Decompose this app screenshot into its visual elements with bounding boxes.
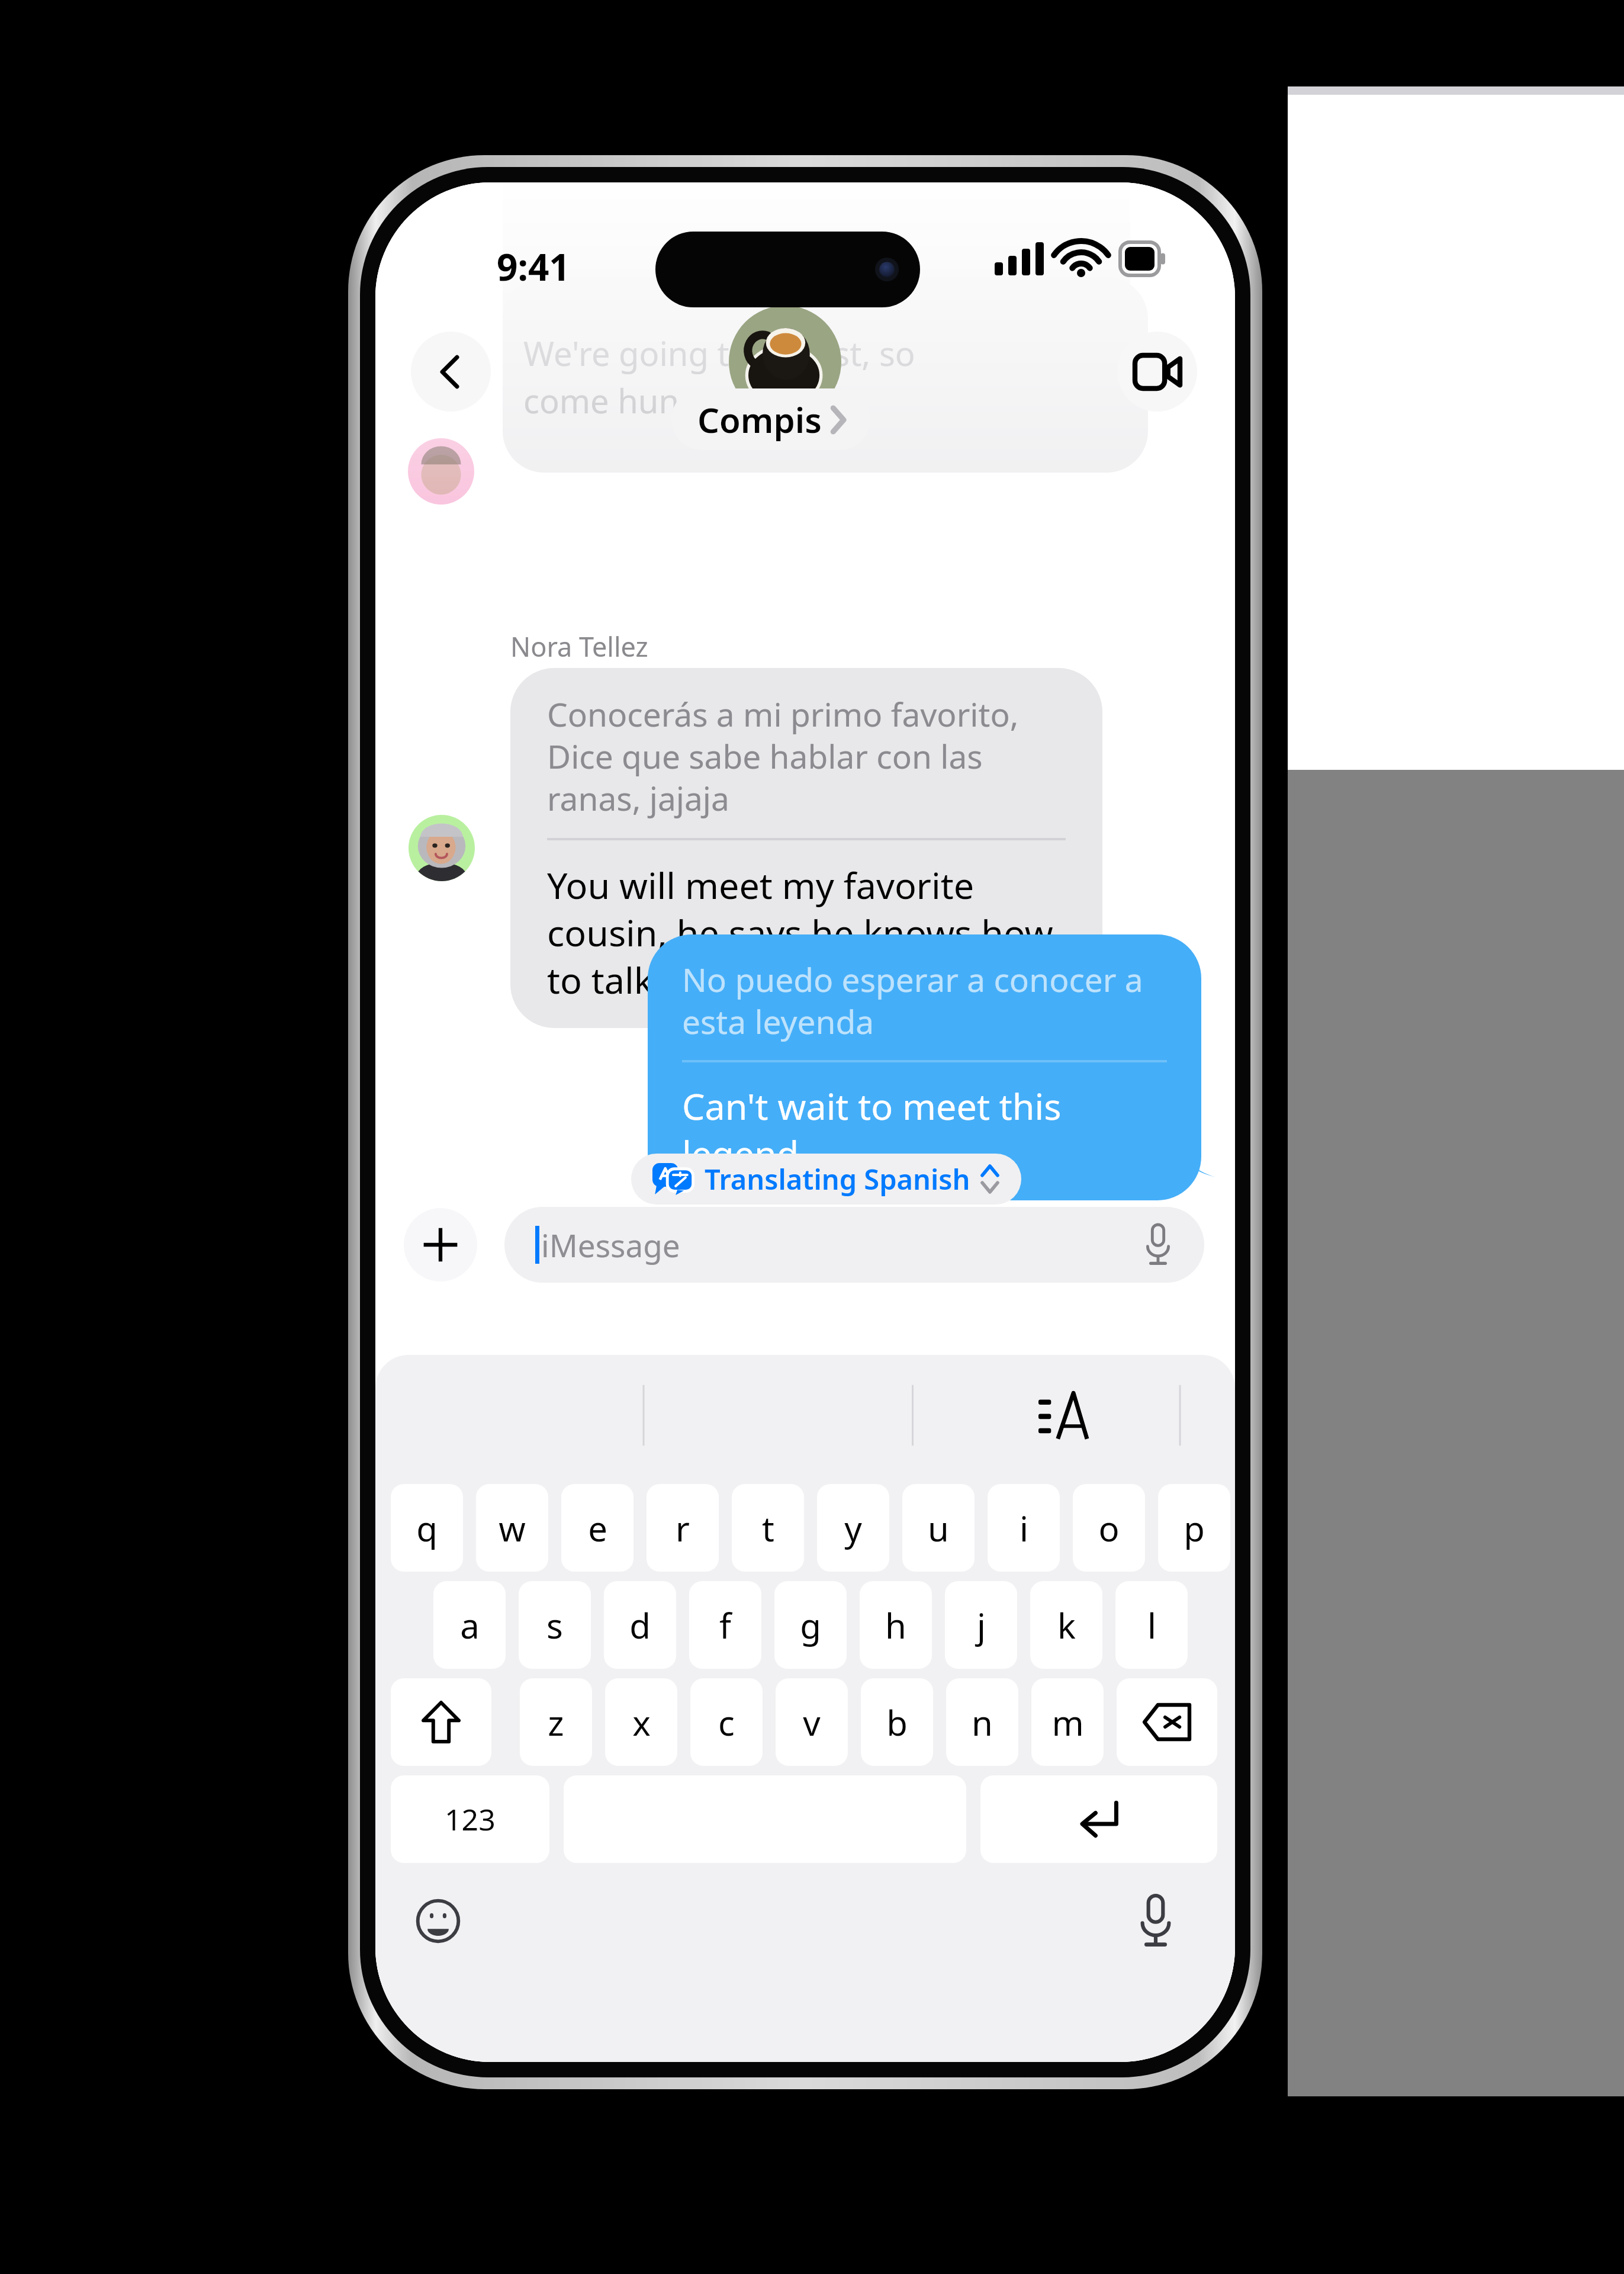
staticText: Conocerás a mi primo favorito, Dice que … — [547, 692, 1066, 820]
button[interactable]: r — [647, 1484, 719, 1572]
staticText: l — [1147, 1602, 1156, 1649]
button[interactable]: l — [1115, 1581, 1188, 1669]
button[interactable]: n — [946, 1678, 1018, 1766]
button[interactable]: x — [605, 1678, 677, 1766]
button[interactable]: s — [519, 1581, 591, 1669]
button[interactable]: o — [1073, 1484, 1145, 1572]
button[interactable]: Add attachment — [404, 1208, 477, 1281]
staticText: o — [1098, 1505, 1120, 1552]
staticText: m — [1051, 1699, 1084, 1746]
button[interactable]: y — [817, 1484, 889, 1572]
staticText: g — [800, 1602, 821, 1649]
button[interactable]: d — [604, 1581, 676, 1669]
staticText: x — [632, 1699, 651, 1746]
staticText: a — [460, 1602, 480, 1649]
staticText: Translating Spanish — [705, 1160, 970, 1198]
staticText: come hungry — [523, 378, 731, 423]
button[interactable]: t — [732, 1484, 804, 1572]
staticText: We're going to a feast, so — [523, 330, 915, 375]
staticText: iMessage — [541, 1223, 680, 1266]
staticText: 9:41 — [497, 242, 570, 291]
button[interactable]: w — [476, 1484, 548, 1572]
button[interactable]: Compis — [671, 388, 870, 450]
staticText: Compis — [697, 396, 822, 443]
button[interactable]: No puedo esperar a conocer a esta leyend… — [648, 934, 1201, 1200]
staticText: Nora Tellez — [510, 628, 648, 664]
button[interactable]: j — [945, 1581, 1017, 1669]
staticText: i — [1020, 1505, 1028, 1552]
button[interactable]: Back — [411, 332, 491, 412]
button[interactable]: h — [860, 1581, 932, 1669]
staticText: c — [718, 1699, 735, 1746]
button[interactable]: k — [1030, 1581, 1102, 1669]
button[interactable]: i — [988, 1484, 1060, 1572]
staticText: s — [546, 1602, 563, 1649]
button[interactable]: c — [690, 1678, 763, 1766]
button[interactable]: b — [861, 1678, 933, 1766]
staticText: No puedo esperar a conocer a esta leyend… — [682, 957, 1167, 1043]
button[interactable]: Shift — [391, 1678, 491, 1766]
staticText: t — [762, 1505, 774, 1552]
button[interactable]: Return — [980, 1775, 1217, 1863]
button[interactable]: f — [689, 1581, 761, 1669]
staticText: b — [886, 1699, 908, 1746]
button[interactable]: Backspace — [1117, 1678, 1217, 1766]
button[interactable]: FaceTime video call — [1117, 332, 1197, 412]
button[interactable]: Translating Spanish — [631, 1154, 1021, 1205]
button[interactable]: e — [561, 1484, 633, 1572]
staticText: r — [676, 1505, 690, 1552]
staticText: e — [588, 1505, 607, 1552]
button[interactable]: m — [1031, 1678, 1104, 1766]
staticText: v — [803, 1699, 821, 1746]
staticText: u — [928, 1505, 949, 1552]
staticText: n — [972, 1699, 993, 1746]
button[interactable]: Emoji keyboard — [409, 1891, 468, 1951]
staticText: 123 — [445, 1799, 496, 1839]
staticText: z — [548, 1699, 564, 1746]
staticText: w — [499, 1505, 526, 1552]
staticText: f — [719, 1602, 731, 1649]
staticText: h — [885, 1602, 906, 1649]
staticText: You will meet my favorite cousin, he say… — [547, 860, 1066, 1004]
button[interactable]: q — [391, 1484, 463, 1572]
staticText: k — [1057, 1602, 1076, 1649]
staticText: Can't wait to meet this legend — [682, 1081, 1167, 1178]
button[interactable]: p — [1158, 1484, 1230, 1572]
button[interactable]: Compis group details — [729, 306, 841, 418]
button[interactable]: iMessage — [504, 1207, 1204, 1283]
button[interactable]: g — [774, 1581, 847, 1669]
staticText: y — [844, 1505, 862, 1552]
staticText: p — [1184, 1505, 1205, 1552]
button[interactable]: v — [776, 1678, 848, 1766]
button[interactable]: 123 — [391, 1775, 549, 1863]
button[interactable]: z — [520, 1678, 592, 1766]
button[interactable]: Conocerás a mi primo favorito, Dice que … — [510, 668, 1102, 1028]
button[interactable]: Dictation — [1126, 1891, 1185, 1951]
staticText: q — [416, 1505, 438, 1552]
staticText: j — [977, 1602, 986, 1649]
staticText: d — [629, 1602, 651, 1649]
button[interactable]: u — [902, 1484, 975, 1572]
button[interactable]: a — [433, 1581, 506, 1669]
